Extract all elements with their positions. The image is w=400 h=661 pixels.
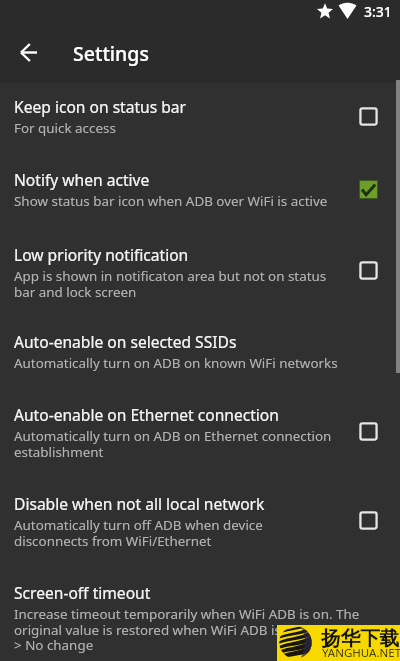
staticText: Automatically turn off ADB when device d… (14, 516, 336, 550)
staticText: App is shown in notificaton area but not… (14, 267, 336, 301)
staticText: Notify when active (14, 169, 150, 190)
button[interactable]: Notify when active (0, 157, 400, 232)
staticText: 扬华下载 (321, 626, 400, 651)
staticText: Auto-enable on Ethernet connection (14, 404, 279, 425)
staticText: Increase timeout temporarily when WiFi A… (14, 605, 390, 654)
button[interactable]: Screen-off timeout (0, 569, 400, 661)
staticText: Screen-off timeout (14, 582, 151, 603)
staticText: Auto-enable on selected SSIDs (14, 331, 237, 352)
staticText: Show status bar icon when ADB over WiFi … (14, 192, 328, 210)
other: Wi-Fi (338, 4, 357, 19)
staticText: For quick access (14, 119, 116, 137)
staticText: Low priority notification (14, 244, 189, 265)
button[interactable]: Back (4, 28, 52, 76)
button[interactable]: Auto-enable on selected SSIDs (0, 320, 400, 393)
staticText: Keep icon on status bar (14, 96, 187, 117)
staticText: YANGHUA.NET (322, 645, 400, 661)
staticText: Automatically turn on ADB on Ethernet co… (14, 427, 336, 461)
staticText: Automatically turn on ADB on known WiFi … (14, 354, 338, 372)
button[interactable]: Keep icon on status bar (0, 84, 400, 157)
button[interactable]: Low priority notification (0, 232, 400, 320)
staticText: Disable when not all local network (14, 493, 265, 514)
other: Starred (317, 3, 333, 19)
button[interactable]: Disable when not all local network (0, 480, 400, 569)
staticText: 3:31 (364, 2, 392, 21)
button[interactable]: Auto-enable on Ethernet connection (0, 393, 400, 480)
staticText: Settings (73, 40, 149, 67)
